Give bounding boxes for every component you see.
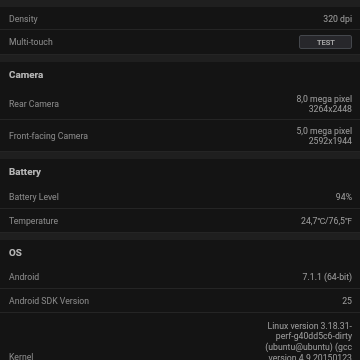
button[interactable]: Android: [0, 265, 360, 289]
staticText: 5,0 mega pixel 2592x1944: [296, 126, 352, 146]
staticText: Kernel: [9, 352, 34, 360]
button[interactable]: Android SDK Version: [0, 289, 360, 313]
staticText: Multi-touch: [9, 37, 53, 47]
button[interactable]: Kernel: [0, 313, 360, 360]
staticText: 8,0 mega pixel 3264x2448: [296, 94, 352, 114]
staticText: Rear Camera: [9, 99, 59, 109]
staticText: 7.1.1 (64-bit): [302, 272, 352, 282]
staticText: Density: [9, 14, 38, 24]
staticText: Battery: [9, 166, 42, 177]
staticText: 24,7℃/76,5℉: [301, 216, 352, 226]
button[interactable]: Front-facing Camera: [0, 120, 360, 152]
button[interactable]: TEST: [299, 35, 352, 49]
button[interactable]: Rear Camera: [0, 87, 360, 120]
button[interactable]: Temperature: [0, 209, 360, 233]
staticText: Front-facing Camera: [9, 131, 88, 141]
staticText: Battery Level: [9, 192, 59, 202]
staticText: Android SDK Version: [9, 296, 90, 306]
staticText: Android: [9, 272, 40, 282]
staticText: Temperature: [9, 216, 59, 226]
staticText: 320 dpi: [323, 14, 352, 24]
staticText: TEST: [317, 38, 335, 47]
button[interactable]: Density: [0, 7, 360, 30]
staticText: 25: [342, 296, 352, 306]
staticText: OS: [9, 247, 22, 258]
staticText: Linux version 3.18.31- perf-g40dd5c6-dir…: [264, 321, 352, 360]
button[interactable]: Battery Level: [0, 184, 360, 209]
staticText: 94%: [335, 192, 352, 202]
staticText: Camera: [9, 69, 44, 80]
